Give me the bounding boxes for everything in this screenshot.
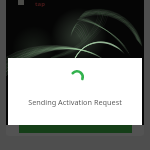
staticText: tap bbox=[35, 0, 45, 8]
staticText: Sending Activation Request bbox=[8, 97, 142, 107]
other: Loading bbox=[70, 70, 84, 84]
